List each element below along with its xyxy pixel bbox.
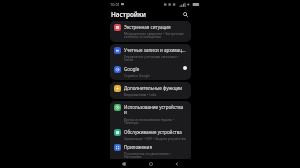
staticText: Сервисы Google [124,73,150,77]
staticText: 10:01 [110,2,120,7]
button[interactable]: Экстренная ситуация [110,22,191,41]
staticText: Время использования экрана • Таймеры при… [124,117,187,125]
staticText: Использование устройства и родительский … [124,104,187,116]
staticText: Экстренная ситуация [124,24,171,30]
button[interactable]: Обслуживание устройства [110,127,191,142]
button[interactable]: Back [169,159,185,168]
button[interactable]: Учетные записи и архивация [110,45,191,64]
button[interactable]: Google [110,64,191,79]
button[interactable]: Дополнительные функции [110,83,191,98]
staticText: Дополнительные функции [124,85,182,91]
button[interactable]: Recents [116,159,132,168]
staticText: Учетные записи и архивация [124,47,187,53]
button[interactable]: Search [181,10,190,19]
button[interactable]: Использование устройства и родительский … [110,102,191,127]
staticText: Google [124,66,140,72]
staticText: Приложения [124,144,153,150]
staticText: Управление учетными записями • Smart Swi… [124,54,187,62]
staticText: Настройки [111,10,146,19]
staticText: Видеовызовы • Labs [124,92,157,96]
staticText: Хранилище • ОЗУ • Защита устройства [124,136,186,140]
staticText: Приложения по умолчанию • Настройки прил… [124,151,187,159]
button[interactable]: Общие настройки [110,165,191,167]
staticText: Медицинские сведения • Экстренные контак… [124,31,185,39]
button[interactable]: Приложения [110,142,191,161]
staticText: Обслуживание устройства [124,129,182,135]
button[interactable]: Home [143,159,159,168]
